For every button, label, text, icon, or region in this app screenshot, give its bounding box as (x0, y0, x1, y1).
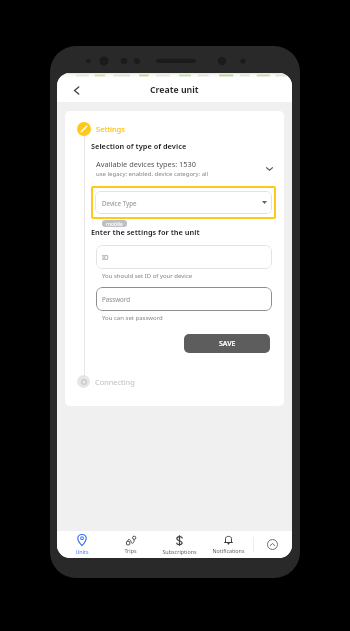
staticText: Create unit (150, 84, 199, 96)
button[interactable]: Available devices types: 1530 (91, 159, 276, 178)
button[interactable]: Subscriptions (155, 531, 204, 558)
button[interactable]: Trips (106, 531, 155, 558)
staticText: Device Type (102, 199, 137, 207)
staticText: Connecting (95, 377, 135, 387)
staticText: mobile (106, 220, 123, 227)
staticText: You should set ID of your device (102, 272, 193, 280)
staticText: Notifications (212, 547, 245, 554)
staticText: You can set password (102, 314, 163, 322)
button[interactable]: ID (96, 245, 272, 269)
staticText: Password (102, 295, 130, 303)
button[interactable]: Back (64, 78, 88, 102)
staticText: Settings (96, 124, 125, 134)
button[interactable]: SAVE (184, 334, 270, 353)
staticText: Available devices types: 1530 (96, 159, 197, 169)
button[interactable]: Device Type (95, 191, 272, 214)
staticText: ID (102, 253, 109, 261)
staticText: Trips (124, 547, 137, 554)
staticText: SAVE (219, 339, 236, 349)
button[interactable]: Password (96, 287, 272, 311)
staticText: Selection of type of device (91, 141, 187, 151)
staticText: Units (75, 548, 89, 555)
staticText: use legacy: enabled, device category: al… (96, 170, 209, 178)
staticText: Enter the settings for the unit (91, 227, 200, 237)
button[interactable]: Expand (253, 531, 292, 558)
button[interactable]: Units (57, 531, 106, 558)
staticText: Subscriptions (162, 548, 197, 555)
button[interactable]: Notifications (204, 531, 253, 558)
